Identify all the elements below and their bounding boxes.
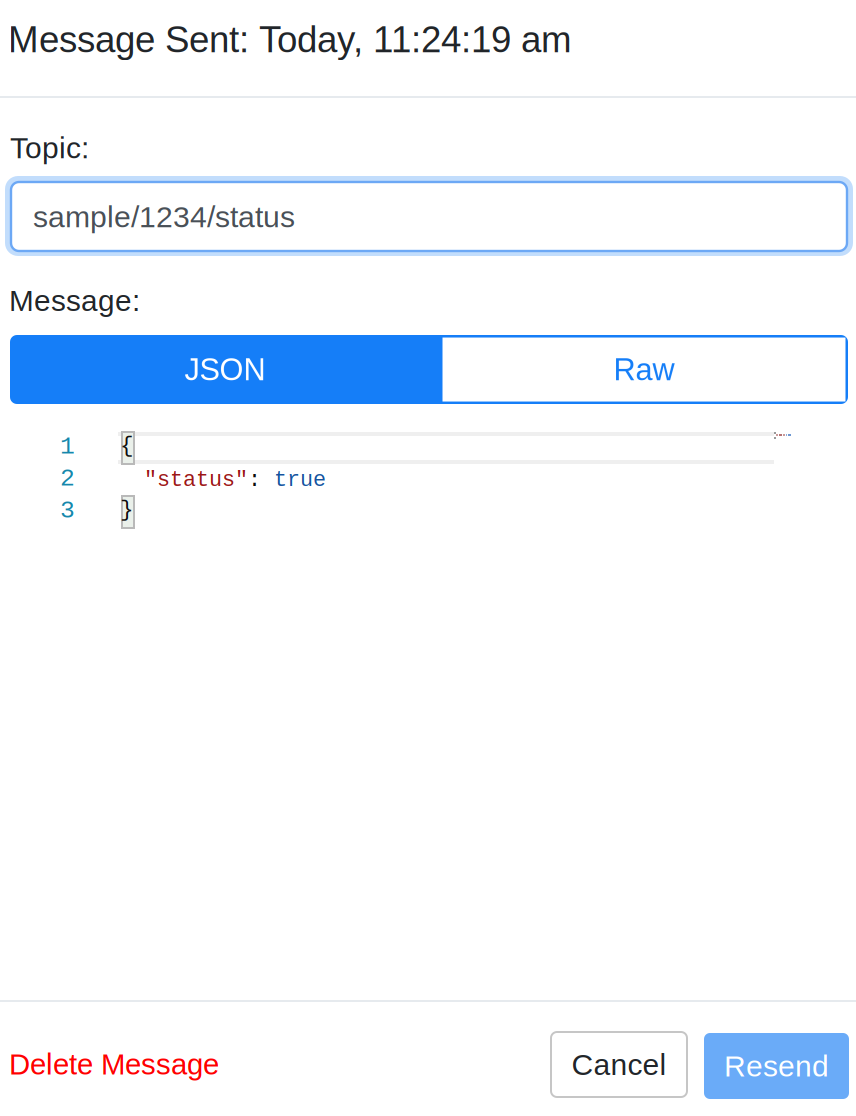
staticText: Message Sent: Today, 11:24:19 am xyxy=(8,19,572,60)
staticText: 2 xyxy=(60,465,75,493)
staticText: Topic: xyxy=(10,131,89,164)
staticText: Delete Message xyxy=(9,1048,219,1081)
button[interactable]: Raw xyxy=(440,335,848,404)
staticText: 3 xyxy=(60,497,75,525)
button[interactable]: Resend xyxy=(704,1033,849,1099)
button[interactable]: JSON xyxy=(10,335,440,404)
button[interactable]: Delete Message xyxy=(9,1048,224,1082)
staticText: JSON xyxy=(184,352,265,387)
staticText: Resend xyxy=(724,1049,829,1083)
staticText: sample/1234/status xyxy=(33,200,295,234)
staticText: Message: xyxy=(9,284,140,317)
button[interactable]: sample/1234/status xyxy=(5,176,853,256)
staticText: Raw xyxy=(613,352,674,387)
staticText: : xyxy=(248,468,261,493)
staticText: Cancel xyxy=(571,1048,666,1081)
staticText: } xyxy=(120,497,134,523)
staticText: { xyxy=(120,433,134,459)
button[interactable]: Cancel xyxy=(551,1032,687,1097)
staticText: true xyxy=(261,468,326,493)
staticText: "status" xyxy=(144,468,248,493)
staticText: 1 xyxy=(60,433,75,461)
